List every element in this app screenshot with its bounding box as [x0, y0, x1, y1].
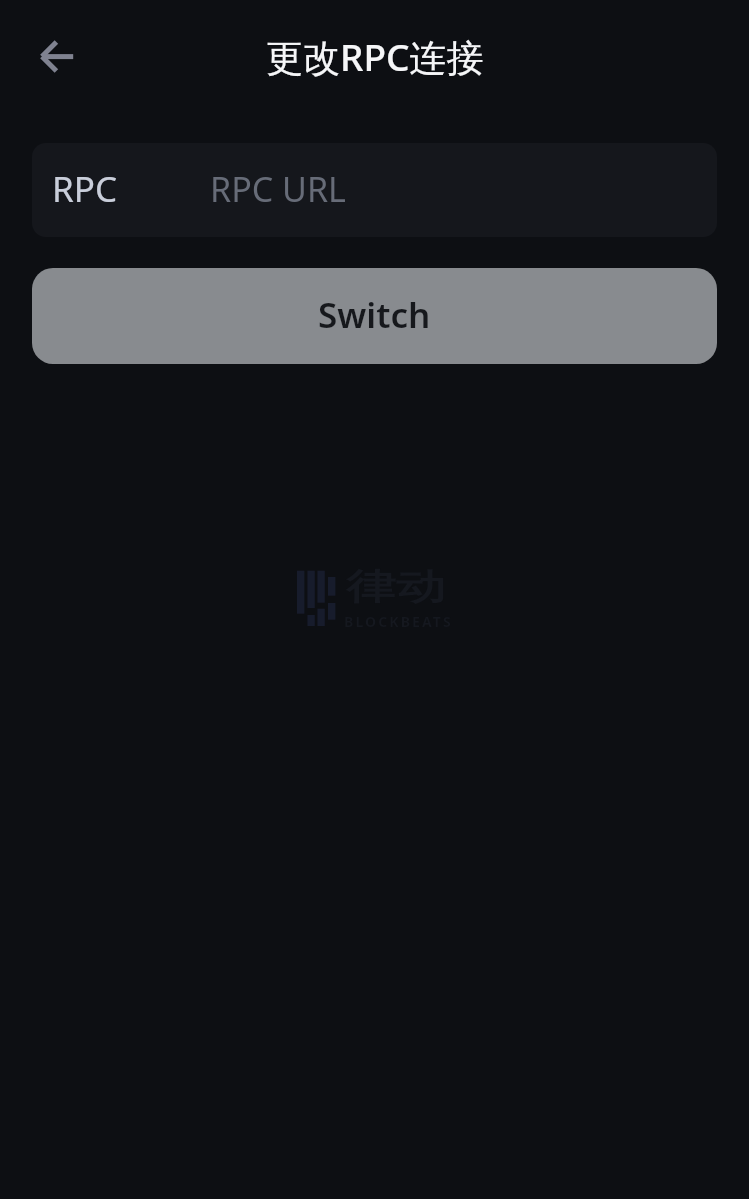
button[interactable]: RPC	[32, 143, 717, 237]
staticText: 律动	[346, 564, 446, 609]
staticText: RPC URL	[210, 166, 346, 212]
staticText: BLOCKBEATS	[344, 612, 453, 631]
staticText: 更改RPC连接	[266, 31, 484, 82]
staticText: Switch	[318, 291, 431, 339]
button[interactable]: Back	[24, 25, 88, 89]
button[interactable]: Switch	[32, 268, 717, 364]
staticText: RPC	[52, 165, 118, 213]
